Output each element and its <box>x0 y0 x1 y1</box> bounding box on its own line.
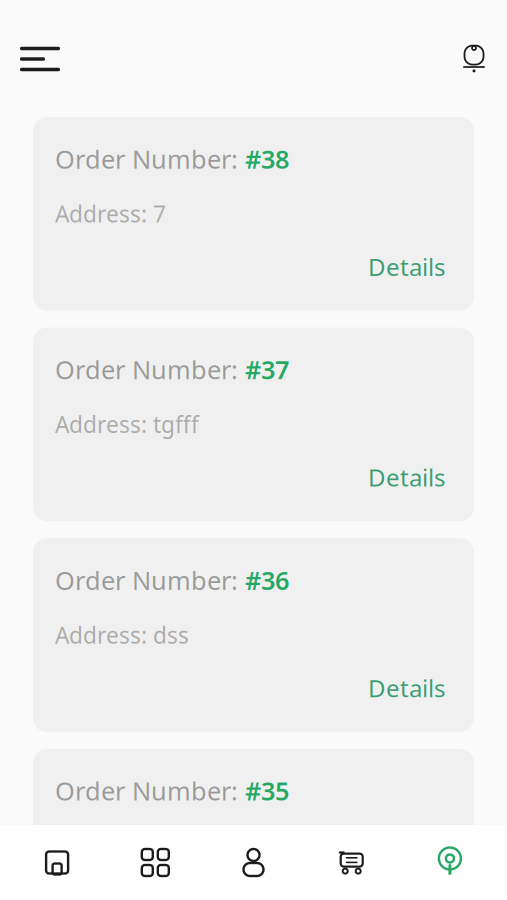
staticText: #38 <box>245 142 289 176</box>
button[interactable]: Details <box>366 668 447 708</box>
button[interactable]: Orders <box>401 846 499 878</box>
staticText: #37 <box>245 353 289 386</box>
button[interactable]: Order Number: <box>33 749 474 900</box>
staticText: Details <box>368 251 445 283</box>
button[interactable]: Menu <box>12 37 68 81</box>
staticText: Details <box>368 461 445 493</box>
staticText: Address: dss <box>55 830 189 861</box>
staticText: Address: dss <box>55 620 189 650</box>
button[interactable]: Order Number: <box>33 117 474 311</box>
staticText: Address: 7 <box>55 199 166 229</box>
button[interactable]: Order Number: <box>33 538 474 732</box>
staticText: Order Number: <box>55 774 245 807</box>
staticText: Details <box>368 672 445 704</box>
staticText: Order Number: <box>55 142 245 176</box>
staticText: #35 <box>245 774 289 807</box>
staticText: Address: tgfff <box>55 409 199 439</box>
button[interactable]: Details <box>366 457 447 497</box>
button[interactable]: Cart <box>303 847 401 877</box>
button[interactable]: Profile <box>204 847 303 877</box>
button[interactable]: Notifications <box>453 38 495 80</box>
button[interactable]: Details <box>366 247 447 287</box>
staticText: #36 <box>245 563 289 597</box>
staticText: Order Number: <box>55 353 245 386</box>
staticText: Order Number: <box>55 563 245 597</box>
button[interactable]: Order Number: <box>33 328 474 521</box>
button[interactable]: Home <box>8 847 106 877</box>
button[interactable]: Categories <box>106 847 204 877</box>
